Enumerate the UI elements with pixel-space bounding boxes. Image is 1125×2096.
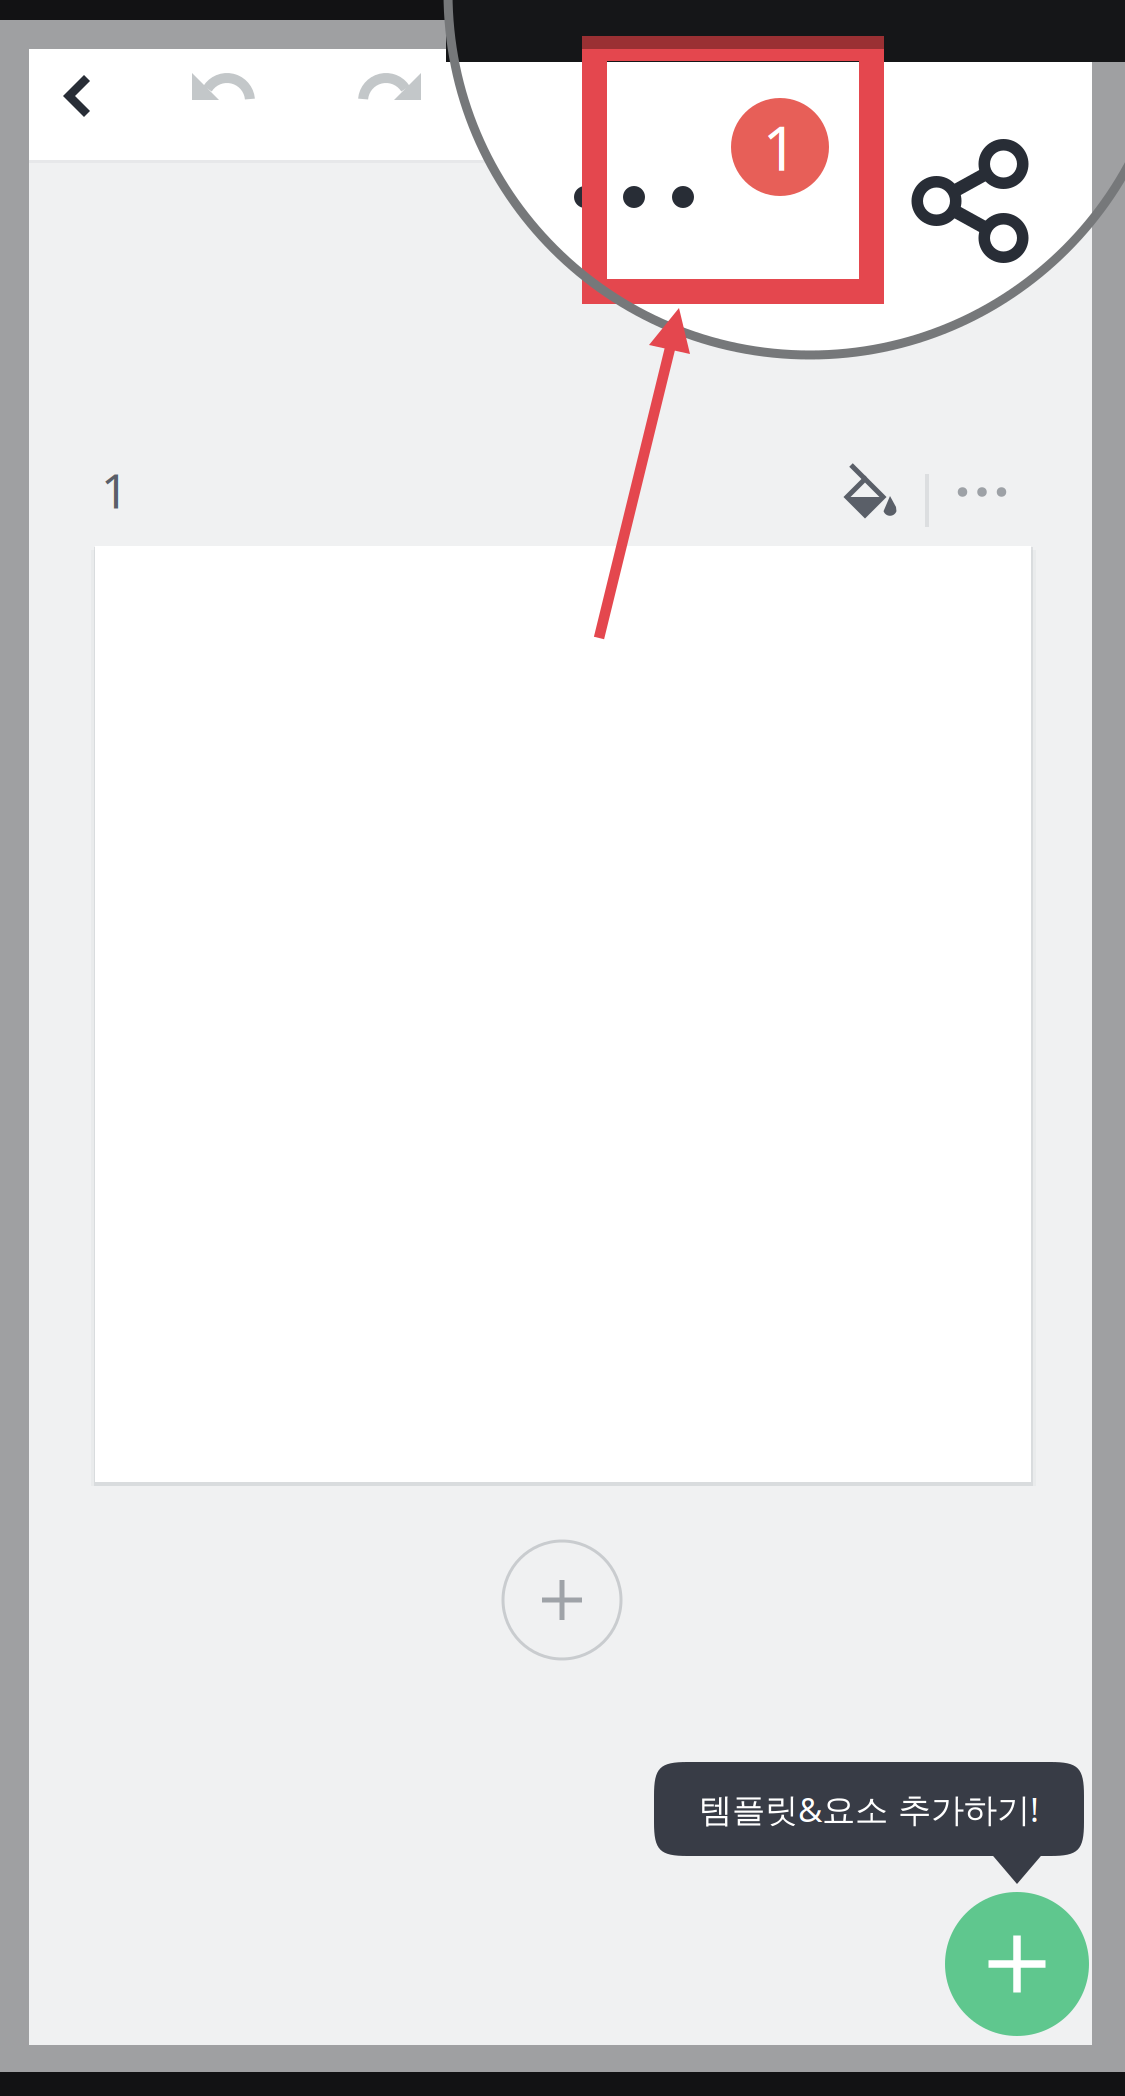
button[interactable]: More, 1 new — [561, 76, 841, 266]
button[interactable]: Undo — [165, 35, 275, 139]
button[interactable]: Back — [28, 44, 128, 148]
button[interactable]: Add element — [937, 1884, 1097, 2044]
button[interactable]: Add page — [492, 1530, 632, 1670]
button[interactable]: Redo — [338, 35, 448, 139]
staticText: 1 — [762, 106, 797, 188]
button[interactable]: More page options — [922, 447, 1042, 537]
button[interactable]: Share — [897, 136, 1047, 266]
button[interactable]: Background colour — [820, 446, 920, 546]
staticText: 1 — [101, 458, 128, 522]
staticText: 템플릿&요소 추가하기! — [699, 1787, 1039, 1831]
